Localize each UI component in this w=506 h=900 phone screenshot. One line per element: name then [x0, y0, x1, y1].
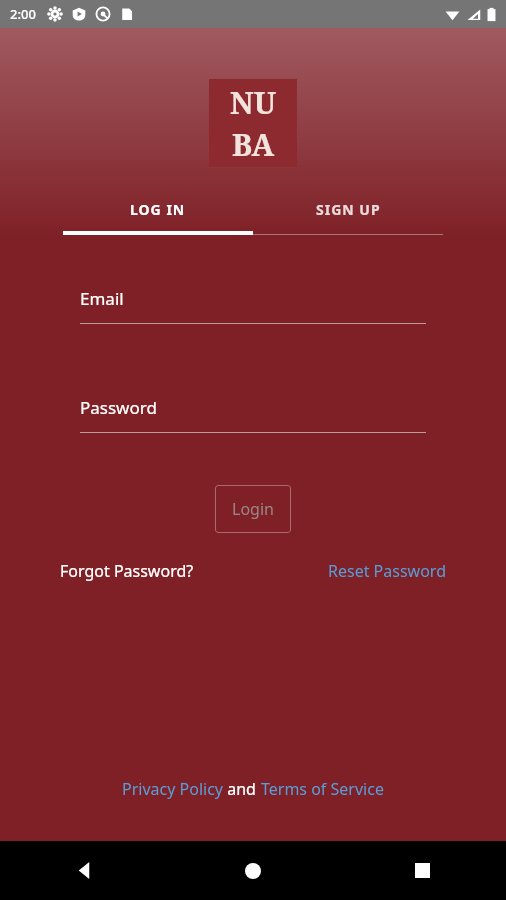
button[interactable]: Email — [80, 287, 426, 324]
staticText: Privacy Policy — [122, 778, 223, 800]
staticText: Email — [80, 287, 124, 310]
button[interactable]: Password — [80, 396, 426, 433]
staticText: SIGN UP — [316, 200, 381, 219]
button[interactable]: Privacy Policy — [122, 778, 223, 800]
staticText: and — [223, 778, 261, 800]
button[interactable]: LOG IN — [63, 187, 253, 231]
button[interactable]: Login — [215, 485, 291, 533]
button[interactable]: Terms of Service — [261, 778, 384, 800]
button[interactable]: Recent apps — [338, 841, 506, 900]
button[interactable]: Reset Password — [328, 560, 446, 582]
staticText: Forgot Password? — [60, 560, 194, 582]
button[interactable]: Back — [0, 841, 168, 900]
staticText: NU — [230, 82, 277, 123]
staticText: 2:00 — [10, 5, 36, 23]
button[interactable]: Forgot Password? — [60, 560, 194, 582]
staticText: Password — [80, 396, 157, 419]
staticText: LOG IN — [130, 200, 186, 219]
staticText: Reset Password — [328, 560, 446, 582]
button[interactable]: Home — [169, 841, 337, 900]
staticText: BA — [232, 124, 275, 165]
staticText: Login — [232, 498, 274, 520]
staticText: Terms of Service — [261, 778, 384, 800]
button[interactable]: SIGN UP — [253, 187, 443, 231]
